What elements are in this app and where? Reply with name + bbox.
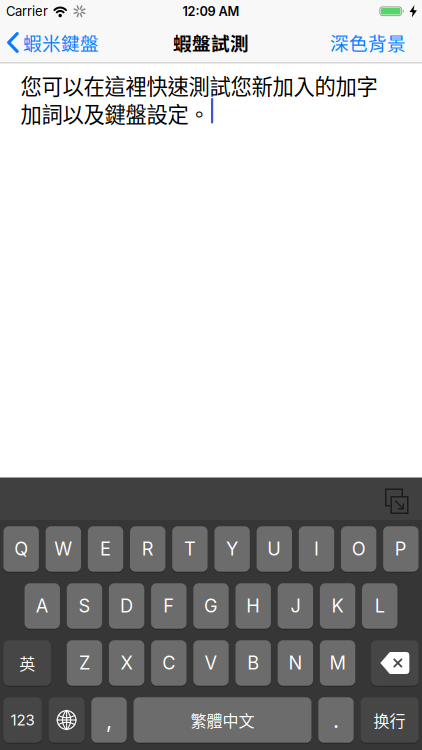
staticText: 蝦米鍵盤 [23,30,99,55]
button[interactable]: H [235,583,271,629]
button[interactable]: G [193,583,229,629]
staticText: 繁體中文 [190,709,254,731]
staticText: V [204,652,217,673]
button[interactable]: N [278,640,313,686]
staticText: P [395,538,407,559]
staticText: E [100,538,111,559]
staticText: 换行 [374,709,406,731]
staticText: Q [14,538,28,559]
button[interactable]: E [88,526,123,572]
staticText: L [375,595,385,616]
button[interactable]: 繁體中文 [133,697,311,743]
button[interactable]: W [46,526,81,572]
button[interactable]: A [24,583,60,629]
staticText: , [106,707,112,733]
button[interactable]: K [320,583,355,629]
button[interactable]: U [257,526,292,572]
button[interactable]: C [151,640,186,686]
staticText: D [120,595,133,616]
button[interactable]: Z [67,640,102,686]
button[interactable]: R [130,526,165,572]
button[interactable]: B [235,640,271,686]
staticText: M [330,652,346,673]
button[interactable]: P [383,526,418,572]
staticText: J [290,595,300,616]
button[interactable]: L [362,583,397,629]
staticText: K [332,595,344,616]
button[interactable]: O [341,526,376,572]
staticText: T [184,538,196,559]
staticText: Y [226,538,238,559]
staticText: C [162,652,175,673]
staticText: R [142,538,154,559]
button[interactable]: 蝦米鍵盤 [0,30,99,55]
staticText: H [246,595,260,616]
button[interactable]: J [278,583,313,629]
button[interactable]: F [151,583,186,629]
button[interactable]: Next keyboard [49,697,85,743]
staticText: 加詞以及鍵盤設定。 [20,98,209,128]
button[interactable]: 深色背景 [330,30,422,55]
button[interactable]: , [91,697,127,743]
staticText: I [314,538,319,559]
staticText: O [352,538,366,559]
staticText: S [78,595,90,616]
button[interactable]: V [193,640,229,686]
staticText: F [163,595,174,616]
button[interactable]: . [318,697,354,743]
staticText: 英 [19,652,35,674]
staticText: Z [79,652,90,673]
staticText: 深色背景 [330,30,406,55]
button[interactable]: 123 [3,697,42,743]
button[interactable]: I [299,526,334,572]
staticText: B [247,652,259,673]
staticText: 123 [11,711,35,729]
button[interactable]: Y [214,526,250,572]
staticText: G [204,595,218,616]
button[interactable]: Delete [371,640,419,686]
staticText: X [121,652,133,673]
button[interactable]: Q [3,526,39,572]
button[interactable]: 英 [3,640,51,686]
staticText: W [54,538,72,559]
button[interactable]: D [109,583,144,629]
button[interactable]: 换行 [360,697,419,743]
button[interactable]: S [67,583,102,629]
button[interactable]: M [320,640,355,686]
staticText: 您可以在這裡快速測試您新加入的加字 [20,70,377,100]
staticText: 蝦盤試測 [173,30,249,55]
staticText: A [36,595,49,616]
staticText: Carrier [6,4,48,19]
button[interactable]: Dismiss keyboard [385,488,408,514]
staticText: U [267,538,281,559]
button[interactable]: X [109,640,144,686]
button[interactable]: T [172,526,208,572]
staticText: . [333,707,339,733]
staticText: 12:09 AM [182,4,239,19]
staticText: N [288,652,302,673]
